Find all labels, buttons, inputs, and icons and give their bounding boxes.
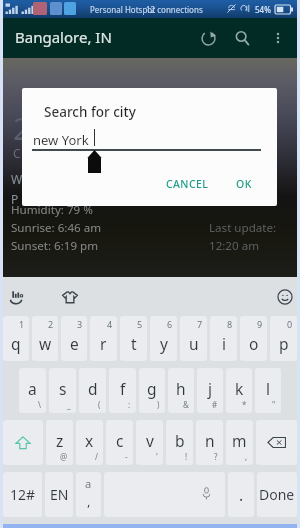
staticText: o: [249, 333, 259, 354]
button[interactable]: n: [196, 420, 223, 465]
button[interactable]: Status bar: [0, 0, 300, 18]
staticText: d: [88, 378, 98, 399]
staticText: v: [146, 430, 154, 451]
button[interactable]: .: [228, 472, 254, 517]
staticText: P: [11, 191, 19, 207]
button[interactable]: shift: [3, 420, 43, 465]
staticText: ,: [245, 451, 248, 462]
staticText: n: [205, 430, 215, 451]
staticText: Sunrise: 6:46 am: [11, 220, 102, 236]
button[interactable]: 0: [270, 316, 297, 361]
button[interactable]: j: [197, 368, 223, 413]
staticText: C: [13, 145, 21, 161]
button[interactable]: OK: [222, 171, 266, 197]
staticText: @: [60, 451, 68, 462]
staticText: 9: [257, 318, 263, 330]
staticText: 8: [227, 318, 233, 330]
button[interactable]: k: [226, 368, 252, 413]
staticText: f: [120, 378, 126, 399]
button[interactable]: a: [19, 368, 46, 413]
staticText: Personal Hotspot: [90, 4, 156, 15]
staticText: 12:20 am: [209, 238, 259, 254]
staticText: y: [160, 333, 168, 354]
button[interactable]: 3: [61, 316, 87, 361]
staticText: j: [208, 378, 212, 399]
staticText: Bangalore, IN: [15, 27, 112, 47]
staticText: OK: [236, 177, 252, 191]
button[interactable]: 5: [120, 316, 147, 361]
button[interactable]: m: [226, 420, 253, 465]
button[interactable]: space: [104, 472, 225, 517]
button[interactable]: 1: [3, 316, 29, 361]
button[interactable]: CANCEL: [155, 171, 219, 197]
staticText: w: [39, 333, 52, 354]
button[interactable]: 9: [240, 316, 267, 361]
button[interactable]: 7: [180, 316, 207, 361]
staticText: 12 connections: [146, 4, 203, 15]
staticText: #: [212, 399, 218, 410]
staticText: l: [266, 378, 270, 399]
button[interactable]: Refresh: [194, 24, 222, 52]
staticText: z: [56, 430, 64, 451]
button[interactable]: b: [166, 420, 193, 465]
staticText: p: [279, 333, 289, 354]
button[interactable]: lang: [76, 472, 101, 517]
staticText: Last update:: [209, 220, 277, 236]
staticText: 12#: [10, 485, 36, 504]
button[interactable]: c: [106, 420, 133, 465]
button[interactable]: back: [256, 420, 297, 465]
button[interactable]: EN: [45, 472, 73, 517]
button[interactable]: s: [49, 368, 76, 413]
staticText: :: [128, 399, 131, 410]
staticText: k: [235, 378, 244, 399]
staticText: 4: [107, 318, 113, 330]
staticText: 2: [48, 318, 54, 330]
staticText: m: [232, 430, 247, 451]
staticText: CANCEL: [166, 177, 209, 191]
staticText: 3: [77, 318, 83, 330]
staticText: ?: [214, 451, 218, 462]
staticText: ": [272, 399, 276, 410]
staticText: Search for city: [44, 103, 136, 121]
button[interactable]: 8: [210, 316, 237, 361]
button[interactable]: h: [168, 368, 194, 413]
staticText: W: [11, 171, 23, 187]
staticText: b: [175, 430, 185, 451]
staticText: c: [116, 430, 124, 451]
staticText: e: [70, 333, 79, 354]
button[interactable]: 2: [32, 316, 58, 361]
button[interactable]: d: [79, 368, 106, 413]
button[interactable]: 12#: [3, 472, 42, 517]
staticText: 6: [167, 318, 173, 330]
button[interactable]: More options: [264, 24, 292, 52]
button[interactable]: Themes: [61, 288, 79, 306]
staticText: 7: [197, 318, 203, 330]
staticText: r: [100, 333, 107, 354]
staticText: \: [38, 399, 41, 410]
staticText: a: [28, 378, 37, 399]
staticText: (: [98, 399, 101, 410]
staticText: /: [95, 451, 98, 462]
staticText: x: [85, 430, 94, 451]
staticText: 5: [137, 318, 143, 330]
staticText: g: [147, 378, 157, 399]
staticText: q: [11, 333, 21, 354]
button[interactable]: Emoji: [276, 288, 294, 306]
staticText: .: [239, 484, 244, 505]
button[interactable]: Keyboard menu: [8, 288, 26, 306]
button[interactable]: Search: [228, 24, 256, 52]
button[interactable]: l: [255, 368, 281, 413]
button[interactable]: z: [46, 420, 73, 465]
button[interactable]: 4: [90, 316, 117, 361]
button[interactable]: v: [136, 420, 163, 465]
staticText: ': [156, 451, 158, 462]
button[interactable]: g: [139, 368, 165, 413]
staticText: -: [125, 451, 128, 462]
staticText: a: [85, 476, 92, 491]
button[interactable]: 6: [150, 316, 177, 361]
staticText: Done: [259, 485, 295, 504]
button[interactable]: Done: [257, 472, 297, 517]
button[interactable]: x: [76, 420, 103, 465]
button[interactable]: f: [109, 368, 136, 413]
staticText: _: [67, 399, 71, 410]
